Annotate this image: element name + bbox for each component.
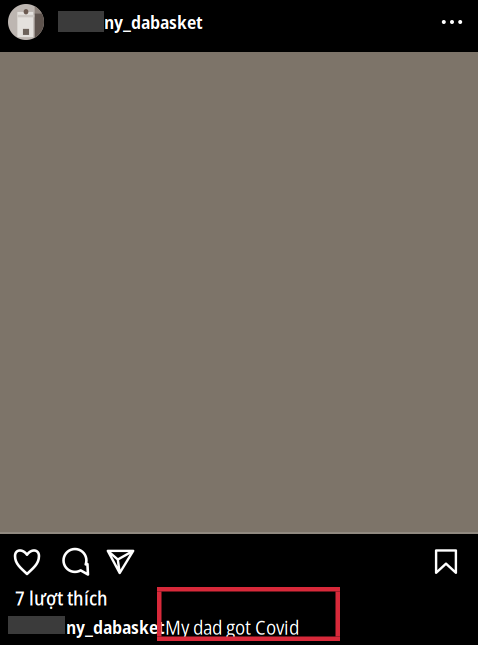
staticText: ny_dabasket bbox=[104, 10, 203, 34]
button[interactable]: 7 lượt thích bbox=[15, 585, 108, 611]
button[interactable]: ny_dabasket bbox=[8, 8, 203, 44]
staticText: My dad got Covid bbox=[165, 614, 299, 640]
button[interactable]: Comment bbox=[63, 548, 89, 574]
button[interactable]: Like bbox=[14, 548, 40, 574]
button[interactable]: Save bbox=[435, 549, 457, 573]
button[interactable]: More options bbox=[437, 13, 467, 39]
staticText: ny_dabasket bbox=[66, 615, 165, 639]
button[interactable]: Share bbox=[107, 548, 134, 575]
staticText: 7 lượt thích bbox=[15, 585, 108, 611]
